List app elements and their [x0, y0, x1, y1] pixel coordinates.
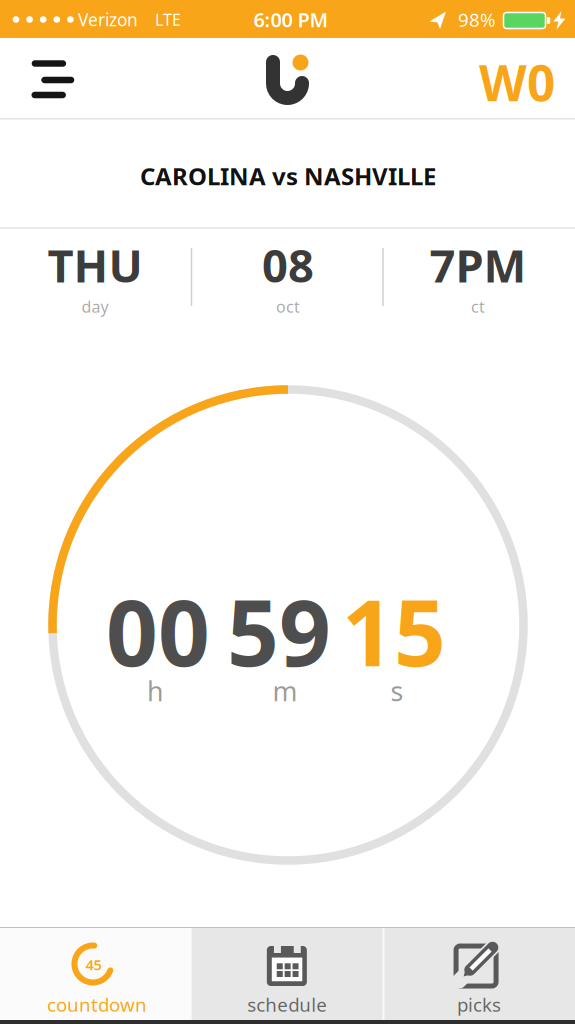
staticText: h [147, 673, 163, 709]
staticText: W0 [479, 49, 555, 115]
staticText: 6:00 PM [253, 6, 328, 33]
staticText: THU [47, 235, 142, 295]
staticText: 45 [85, 955, 101, 974]
staticText: 7PM [429, 235, 526, 295]
staticText: 98% [458, 7, 496, 32]
staticText: day [81, 296, 108, 317]
staticText: CAROLINA vs NASHVILLE [140, 160, 436, 192]
staticText: 15 [342, 571, 446, 691]
button[interactable]: picks [383, 928, 575, 1020]
staticText: s [390, 673, 403, 709]
staticText: 59 [227, 571, 331, 691]
staticText: picks [457, 992, 501, 1017]
staticText: oct [276, 296, 300, 317]
staticText: Verizon [78, 8, 138, 31]
button[interactable]: Menu [24, 54, 80, 104]
staticText: LTE [155, 9, 181, 30]
staticText: schedule [247, 992, 327, 1017]
staticText: ct [471, 296, 485, 317]
staticText: countdown [47, 992, 147, 1017]
staticText: 00 [106, 571, 210, 691]
button[interactable]: schedule [192, 928, 383, 1020]
staticText: m [272, 673, 297, 709]
button[interactable]: W0 [474, 55, 560, 109]
staticText: 08 [262, 235, 314, 295]
button[interactable]: 45 [0, 928, 192, 1020]
